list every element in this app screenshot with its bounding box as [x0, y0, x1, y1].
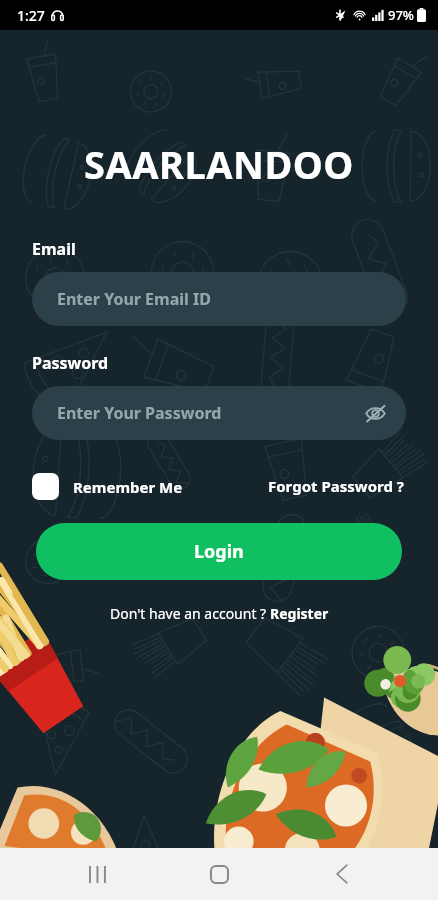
staticText: Register: [270, 604, 329, 623]
button[interactable]: Login: [36, 523, 402, 580]
button[interactable]: Remember Me: [32, 473, 189, 500]
button[interactable]: Forgot Password ?: [266, 472, 406, 500]
staticText: SAARLANDOO: [0, 138, 438, 190]
button[interactable]: Home: [193, 848, 245, 900]
staticText: Enter Your Password: [57, 402, 222, 424]
button[interactable]: Enter Your Password: [32, 386, 406, 440]
button[interactable]: Recent apps: [71, 848, 123, 900]
staticText: 1:27: [17, 6, 45, 25]
staticText: Email: [32, 238, 76, 260]
staticText: Login: [194, 539, 244, 564]
staticText: Enter Your Email ID: [57, 288, 211, 310]
staticText: Remember Me: [73, 477, 183, 497]
staticText: 97%: [388, 6, 414, 24]
button[interactable]: Back: [316, 848, 368, 900]
staticText: Forgot Password ?: [268, 476, 404, 496]
staticText: Don't have an account ?: [110, 604, 270, 623]
staticText: Password: [32, 352, 109, 374]
button[interactable]: Enter Your Email ID: [32, 272, 406, 326]
button[interactable]: Don't have an account ?: [106, 601, 333, 626]
button[interactable]: Show password: [358, 396, 392, 430]
